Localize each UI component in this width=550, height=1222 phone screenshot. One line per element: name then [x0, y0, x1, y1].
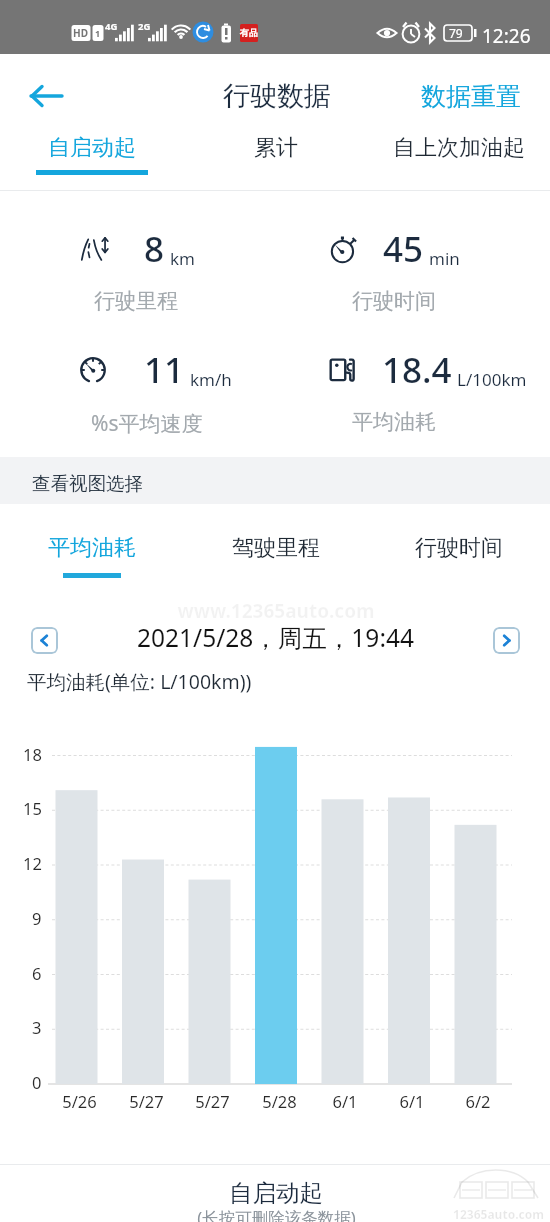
button[interactable]: Previous date — [31, 627, 58, 654]
staticText: 行驶时间 — [415, 534, 503, 562]
staticText: 6 — [32, 962, 42, 984]
staticText: 0 — [32, 1071, 42, 1093]
button[interactable]: Back — [16, 73, 76, 119]
staticText: 79 — [449, 25, 463, 41]
staticText: 2021/5/28，周五，19:44 — [137, 621, 414, 654]
staticText: 平均油耗 — [352, 409, 436, 435]
staticText: min — [429, 247, 460, 270]
staticText: 4G — [105, 20, 118, 33]
staticText: 3 — [32, 1016, 42, 1038]
staticText: 15 — [23, 797, 42, 819]
staticText: 驾驶里程 — [232, 534, 320, 562]
button[interactable]: 自启动起 — [0, 120, 184, 190]
staticText: 查看视图选择 — [32, 472, 143, 495]
staticText: %s平均速度 — [91, 409, 203, 438]
staticText: 2G — [138, 20, 151, 33]
staticText: 5/26 — [62, 1090, 97, 1112]
button[interactable]: 累计 — [184, 120, 367, 190]
staticText: 有品 — [240, 27, 258, 38]
staticText: 6/1 — [332, 1090, 358, 1112]
staticText: 自启动起 — [48, 134, 136, 162]
staticText: 12365auto.com — [453, 1206, 544, 1222]
staticText: L/100km — [457, 368, 527, 391]
staticText: 5/28 — [262, 1090, 297, 1112]
staticText: HD — [73, 26, 88, 40]
staticText: 5/27 — [195, 1090, 230, 1112]
staticText: 平均油耗 — [48, 534, 136, 562]
staticText: 累计 — [254, 134, 298, 162]
staticText: 5/27 — [129, 1090, 164, 1112]
staticText: 行驶里程 — [94, 288, 178, 314]
staticText: 8 — [144, 225, 165, 265]
button[interactable]: 查看视图选择 — [0, 457, 550, 504]
staticText: 45 — [383, 225, 424, 265]
staticText: 6/1 — [399, 1090, 425, 1112]
button[interactable]: 行驶时间 — [367, 504, 550, 594]
staticText: 18 — [23, 743, 42, 765]
staticText: 9 — [32, 907, 42, 929]
staticText: 自上次加油起 — [393, 134, 525, 162]
button[interactable]: Next date — [493, 627, 520, 654]
staticText: 12:26 — [482, 23, 531, 49]
staticText: www.12365auto.com — [177, 598, 375, 624]
button[interactable]: 驾驶里程 — [184, 504, 367, 594]
staticText: 行驶数据 — [223, 79, 331, 113]
staticText: 6/2 — [465, 1090, 491, 1112]
button[interactable]: 平均油耗 — [0, 504, 184, 594]
button[interactable]: 自上次加油起 — [367, 120, 550, 190]
staticText: 自启动起 — [229, 1178, 323, 1208]
staticText: 平均油耗(单位: L/100km)) — [27, 668, 252, 695]
button[interactable]: 数据重置 — [406, 73, 536, 119]
staticText: 行驶时间 — [352, 288, 436, 314]
staticText: 11 — [144, 346, 185, 386]
staticText: km — [170, 247, 195, 270]
staticText: 1 — [95, 27, 101, 39]
staticText: km/h — [190, 368, 232, 391]
staticText: 18.4 — [382, 346, 452, 386]
staticText: (长按可删除该条数据) — [197, 1206, 356, 1222]
staticText: 12 — [23, 852, 42, 874]
staticText: 数据重置 — [421, 81, 521, 112]
